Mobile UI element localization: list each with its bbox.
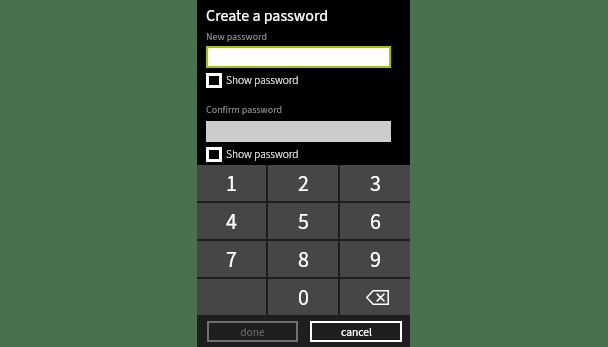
button[interactable]: 2 (268, 165, 338, 201)
staticText: Show password (226, 72, 299, 88)
button[interactable]: 9 (340, 241, 410, 277)
button[interactable]: 4 (197, 203, 266, 239)
button[interactable]: Backspace (340, 279, 410, 315)
staticText: 0 (298, 282, 309, 313)
staticText: Show password (226, 146, 299, 162)
button[interactable]: done (207, 321, 298, 342)
button[interactable]: Show password (206, 72, 299, 88)
staticText: cancel (341, 324, 372, 340)
button[interactable]: 5 (268, 203, 338, 239)
staticText: 4 (226, 206, 237, 237)
staticText: 9 (370, 244, 381, 275)
staticText: 5 (298, 206, 309, 237)
staticText: 6 (370, 206, 381, 237)
button[interactable]: 8 (268, 241, 338, 277)
staticText: done (240, 324, 265, 340)
staticText: 8 (298, 244, 309, 275)
staticText: 3 (370, 168, 381, 199)
staticText: New password (206, 30, 267, 44)
button[interactable]: 6 (340, 203, 410, 239)
button[interactable]: 0 (268, 279, 338, 315)
staticText: Create a password (206, 5, 329, 28)
staticText: 7 (226, 244, 237, 275)
staticText: Confirm password (206, 103, 283, 117)
button[interactable]: 3 (340, 165, 410, 201)
other: Backspace (366, 290, 389, 305)
button[interactable]: cancel (310, 321, 402, 342)
button[interactable]: 1 (197, 165, 266, 201)
button[interactable]: 7 (197, 241, 266, 277)
button[interactable]: Show password (206, 146, 299, 162)
staticText: 2 (298, 168, 309, 199)
staticText: 1 (226, 168, 237, 199)
